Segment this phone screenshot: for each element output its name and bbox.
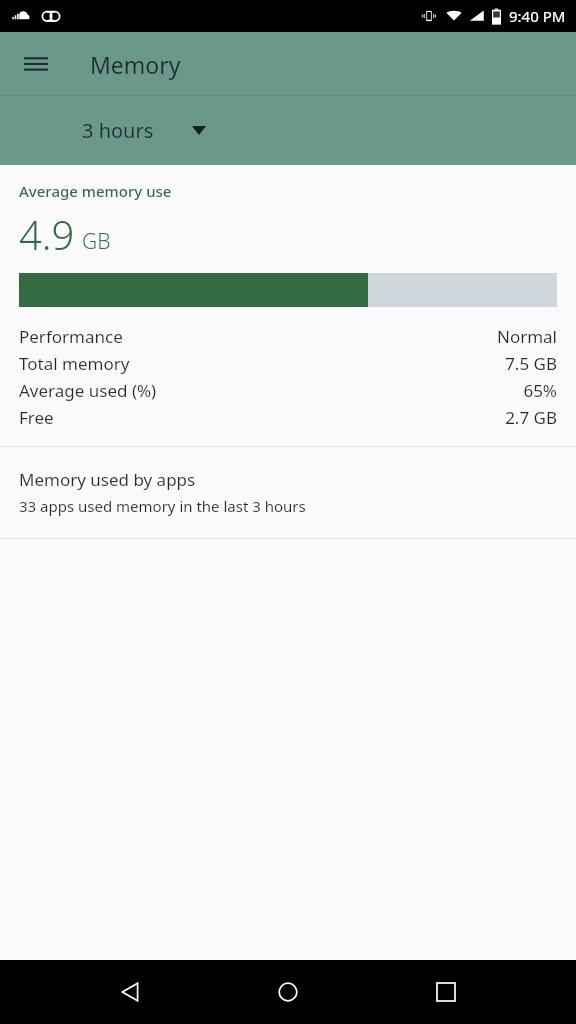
staticText: Memory — [90, 49, 181, 80]
staticText: 2.7 GB — [505, 406, 557, 429]
staticText: Total memory — [19, 352, 130, 375]
button[interactable]: Recent apps — [418, 964, 474, 1020]
staticText: Memory used by apps — [19, 468, 196, 491]
button[interactable]: Back — [102, 964, 158, 1020]
staticText: 7.5 GB — [505, 352, 557, 375]
button[interactable]: Open navigation menu — [12, 40, 60, 88]
staticText: 3 hours — [82, 117, 154, 144]
staticText: GB — [82, 227, 111, 256]
staticText: 4.9 — [19, 207, 75, 261]
staticText: Free — [19, 406, 54, 429]
staticText: Average used (%) — [19, 379, 157, 402]
staticText: 9:40 PM — [509, 6, 566, 26]
button[interactable]: 3 hours — [76, 107, 212, 154]
staticText: 65% — [523, 379, 557, 402]
button[interactable]: Home — [260, 964, 316, 1020]
staticText: Performance — [19, 325, 123, 348]
staticText: Normal — [496, 325, 557, 348]
button[interactable]: Memory used by apps — [0, 447, 576, 538]
staticText: Average memory use — [19, 181, 172, 201]
staticText: 33 apps used memory in the last 3 hours — [19, 496, 306, 516]
